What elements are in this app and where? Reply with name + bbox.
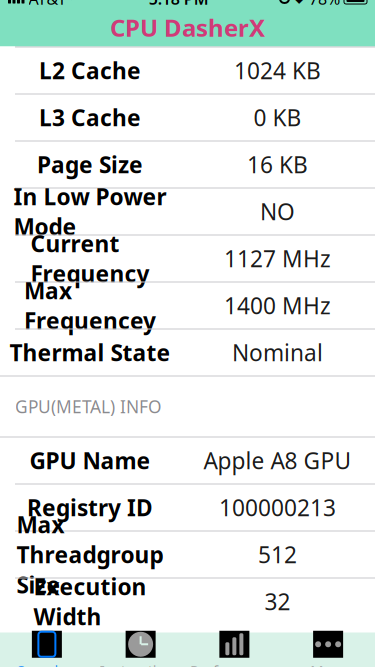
staticText: 78% <box>309 0 340 9</box>
staticText: 1127 MHz <box>224 243 331 273</box>
button[interactable]: Instructions <box>94 632 188 667</box>
staticText: Nominal <box>232 337 323 367</box>
staticText: 1400 MHz <box>224 290 331 320</box>
staticText: 16 KB <box>247 149 308 179</box>
staticText: Max Frequencey <box>24 275 156 336</box>
staticText: GPU Name <box>29 445 150 475</box>
button[interactable]: More <box>281 632 375 667</box>
staticText: Apple A8 GPU <box>203 445 351 475</box>
staticText: Current Frequency <box>30 228 149 289</box>
staticText: GPU(METAL) INFO <box>15 395 162 418</box>
staticText: Execution Width <box>33 571 146 632</box>
staticText: 512 <box>258 539 297 569</box>
staticText: Performance <box>190 661 279 667</box>
staticText: Max Threadgroup Size <box>16 509 163 600</box>
button[interactable]: Overview <box>0 632 94 667</box>
button[interactable]: Performance <box>187 632 281 667</box>
staticText: Overview <box>15 661 78 667</box>
staticText: NO <box>260 196 295 226</box>
staticText: Registry ID <box>27 492 153 522</box>
staticText: 1024 KB <box>234 55 321 85</box>
staticText: 0 KB <box>253 102 301 132</box>
staticText: 100000213 <box>219 492 336 522</box>
staticText: AT&T <box>28 0 66 9</box>
staticText: ⬍ <box>293 0 305 7</box>
staticText: Instructions <box>100 661 182 667</box>
staticText: More <box>310 661 346 667</box>
staticText: In Low Power Mode <box>13 181 166 242</box>
staticText: Thermal State <box>9 337 170 367</box>
staticText: CPU DasherX <box>110 12 265 43</box>
staticText: L3 Cache <box>39 102 141 132</box>
staticText: Page Size <box>37 149 143 179</box>
staticText: 32 <box>264 586 290 616</box>
staticText: L2 Cache <box>39 55 141 85</box>
staticText: 5:18 PM <box>149 0 209 9</box>
